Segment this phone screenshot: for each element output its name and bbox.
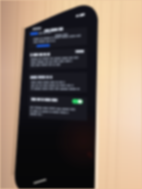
button[interactable]: Battery optimisation switch [69,96,85,106]
button[interactable]: Learn more [30,44,52,50]
button[interactable]: Back [29,32,45,40]
